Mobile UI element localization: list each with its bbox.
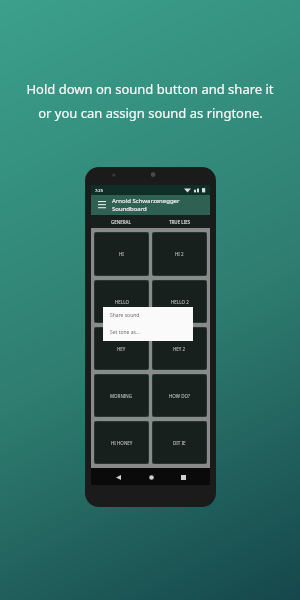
button[interactable]: HI HONEY [94,421,149,464]
button[interactable]: HI [94,232,149,276]
staticText: 7:25 [95,188,103,193]
staticText: Share sound [110,312,140,319]
staticText: or you can assign sound as ringtone. [38,104,263,122]
button[interactable]: DIT IE [152,421,207,464]
staticText: HEY [117,346,126,352]
staticText: HI [119,251,124,257]
staticText: HELLO 2 [171,299,189,305]
button[interactable]: GENERAL [91,215,150,228]
button[interactable]: HEY 2 [152,327,207,370]
staticText: Set tone as... [110,329,140,336]
staticText: TRUE LIES [169,219,191,225]
staticText: MORNING [110,393,133,399]
button[interactable]: Set tone as... [103,324,193,341]
staticText: HELLO [115,299,129,305]
staticText: GENERAL [111,219,131,225]
staticText: HI HONEY [111,440,133,446]
button[interactable]: HOW DO? [152,374,207,417]
button[interactable]: TRUE LIES [150,215,210,228]
button[interactable]: MORNING [94,374,149,417]
staticText: HEY 2 [173,346,186,352]
button[interactable]: Open navigation menu [96,199,108,211]
button[interactable]: Share sound [103,307,193,324]
button[interactable]: Back [112,471,124,483]
button[interactable]: HELLO [94,280,149,323]
staticText: Hold down on sound button and share it [26,80,274,98]
button[interactable]: HEY [94,327,149,370]
button[interactable]: HELLO 2 [152,280,207,323]
staticText: Arnold Schwarzenegger Soundboard [112,197,205,213]
staticText: HI 2 [175,251,184,257]
button[interactable]: HI 2 [152,232,207,276]
staticText: DIT IE [173,440,186,446]
button[interactable]: Recent apps [177,471,189,483]
staticText: HOW DO? [169,393,190,399]
button[interactable]: Home [145,471,157,483]
